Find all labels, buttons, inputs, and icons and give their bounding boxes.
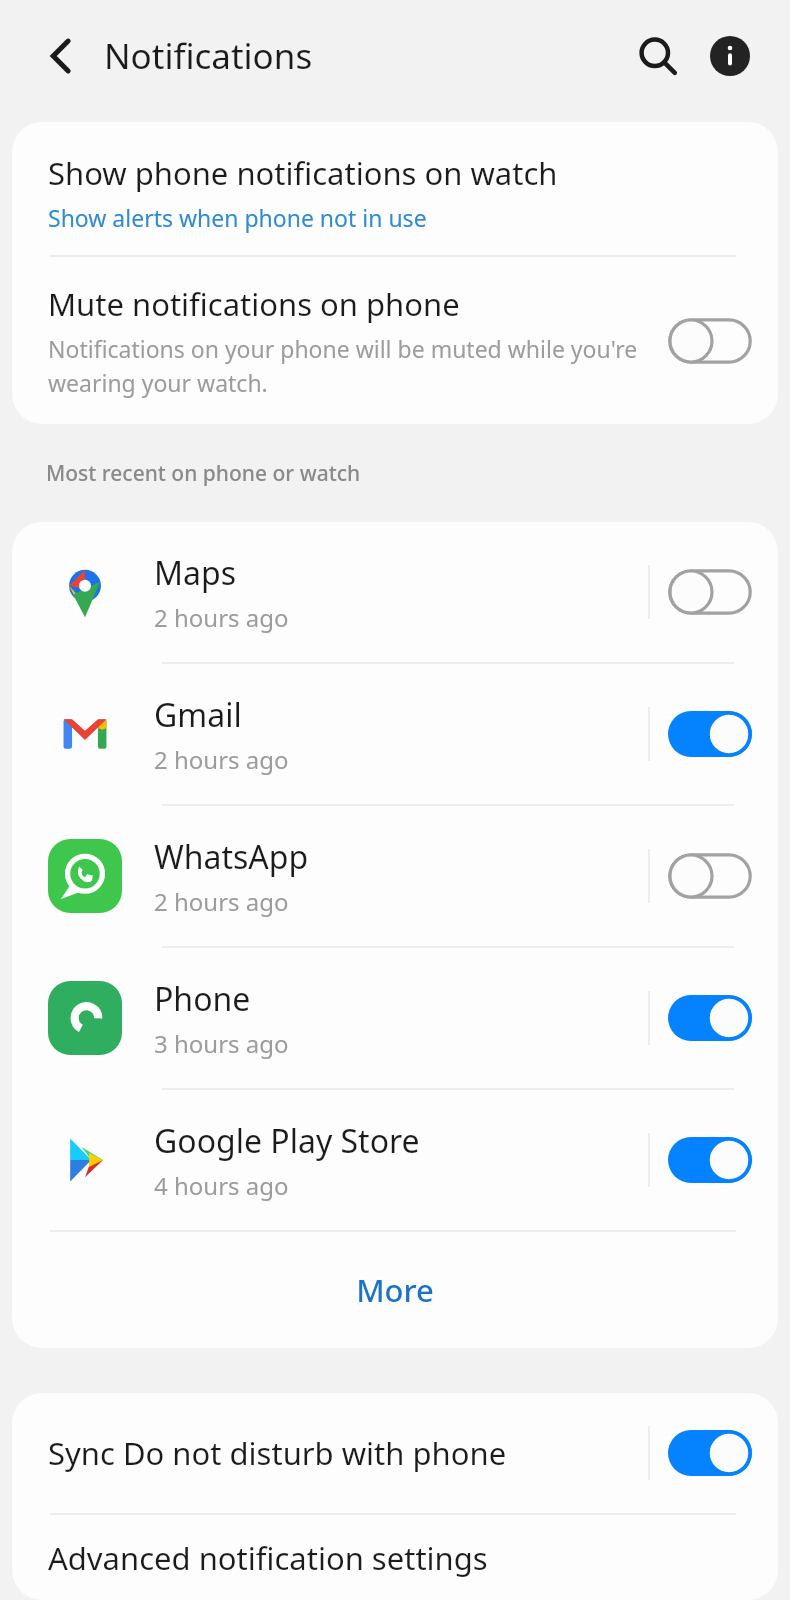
staticText: Notifications	[104, 32, 313, 80]
button[interactable]: On	[668, 1430, 752, 1476]
staticText: Sync Do not disturb with phone	[48, 1432, 648, 1474]
staticText: WhatsApp	[154, 835, 309, 879]
staticText: Maps	[154, 551, 236, 595]
button[interactable]: Search	[622, 20, 694, 92]
staticText: Phone	[154, 977, 251, 1021]
staticText: Show phone notifications on watch	[48, 152, 558, 194]
button[interactable]: Off	[668, 853, 752, 899]
staticText: 2 hours ago	[154, 601, 289, 634]
staticText: Show alerts when phone not in use	[48, 202, 427, 233]
button[interactable]: Off	[668, 318, 752, 364]
staticText: Notifications on your phone will be mute…	[48, 333, 652, 398]
staticText: Mute notifications on phone	[48, 283, 460, 325]
button[interactable]: Show phone notifications on watch	[12, 122, 778, 255]
staticText: Google Play Store	[154, 1119, 420, 1163]
button[interactable]: Sync Do not disturb with phone	[12, 1393, 778, 1513]
button[interactable]: On	[668, 1137, 752, 1183]
button[interactable]: On	[668, 711, 752, 757]
staticText: More	[356, 1269, 434, 1311]
staticText: Gmail	[154, 693, 242, 737]
staticText: 2 hours ago	[154, 743, 289, 776]
button[interactable]: Google Play Store	[12, 1090, 778, 1230]
staticText: 2 hours ago	[154, 885, 289, 918]
button[interactable]: Maps	[12, 522, 778, 662]
button[interactable]: Back	[26, 20, 98, 92]
button[interactable]: WhatsApp	[12, 806, 778, 946]
button[interactable]: Phone	[12, 948, 778, 1088]
button[interactable]: Gmail	[12, 664, 778, 804]
button[interactable]: Information	[694, 20, 766, 92]
staticText: Most recent on phone or watch	[46, 459, 361, 488]
button[interactable]: More	[12, 1232, 778, 1348]
staticText: 3 hours ago	[154, 1027, 289, 1060]
button[interactable]: Advanced notification settings	[12, 1515, 778, 1600]
staticText: 4 hours ago	[154, 1169, 289, 1202]
button[interactable]: Off	[668, 569, 752, 615]
button[interactable]: On	[668, 995, 752, 1041]
button[interactable]: Mute notifications on phone	[12, 257, 778, 424]
staticText: Advanced notification settings	[48, 1537, 488, 1579]
